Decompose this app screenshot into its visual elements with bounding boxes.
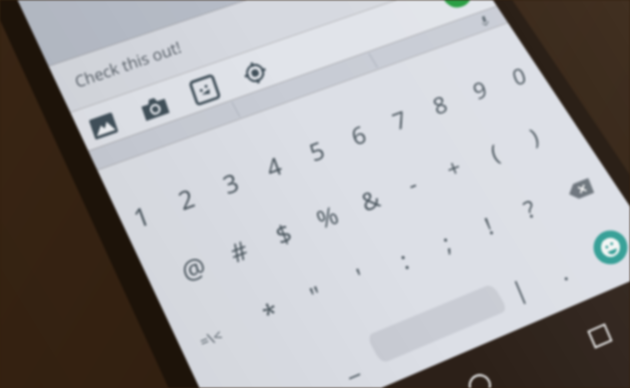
button[interactable]: Messaging keyboard screen: [0, 0, 630, 388]
